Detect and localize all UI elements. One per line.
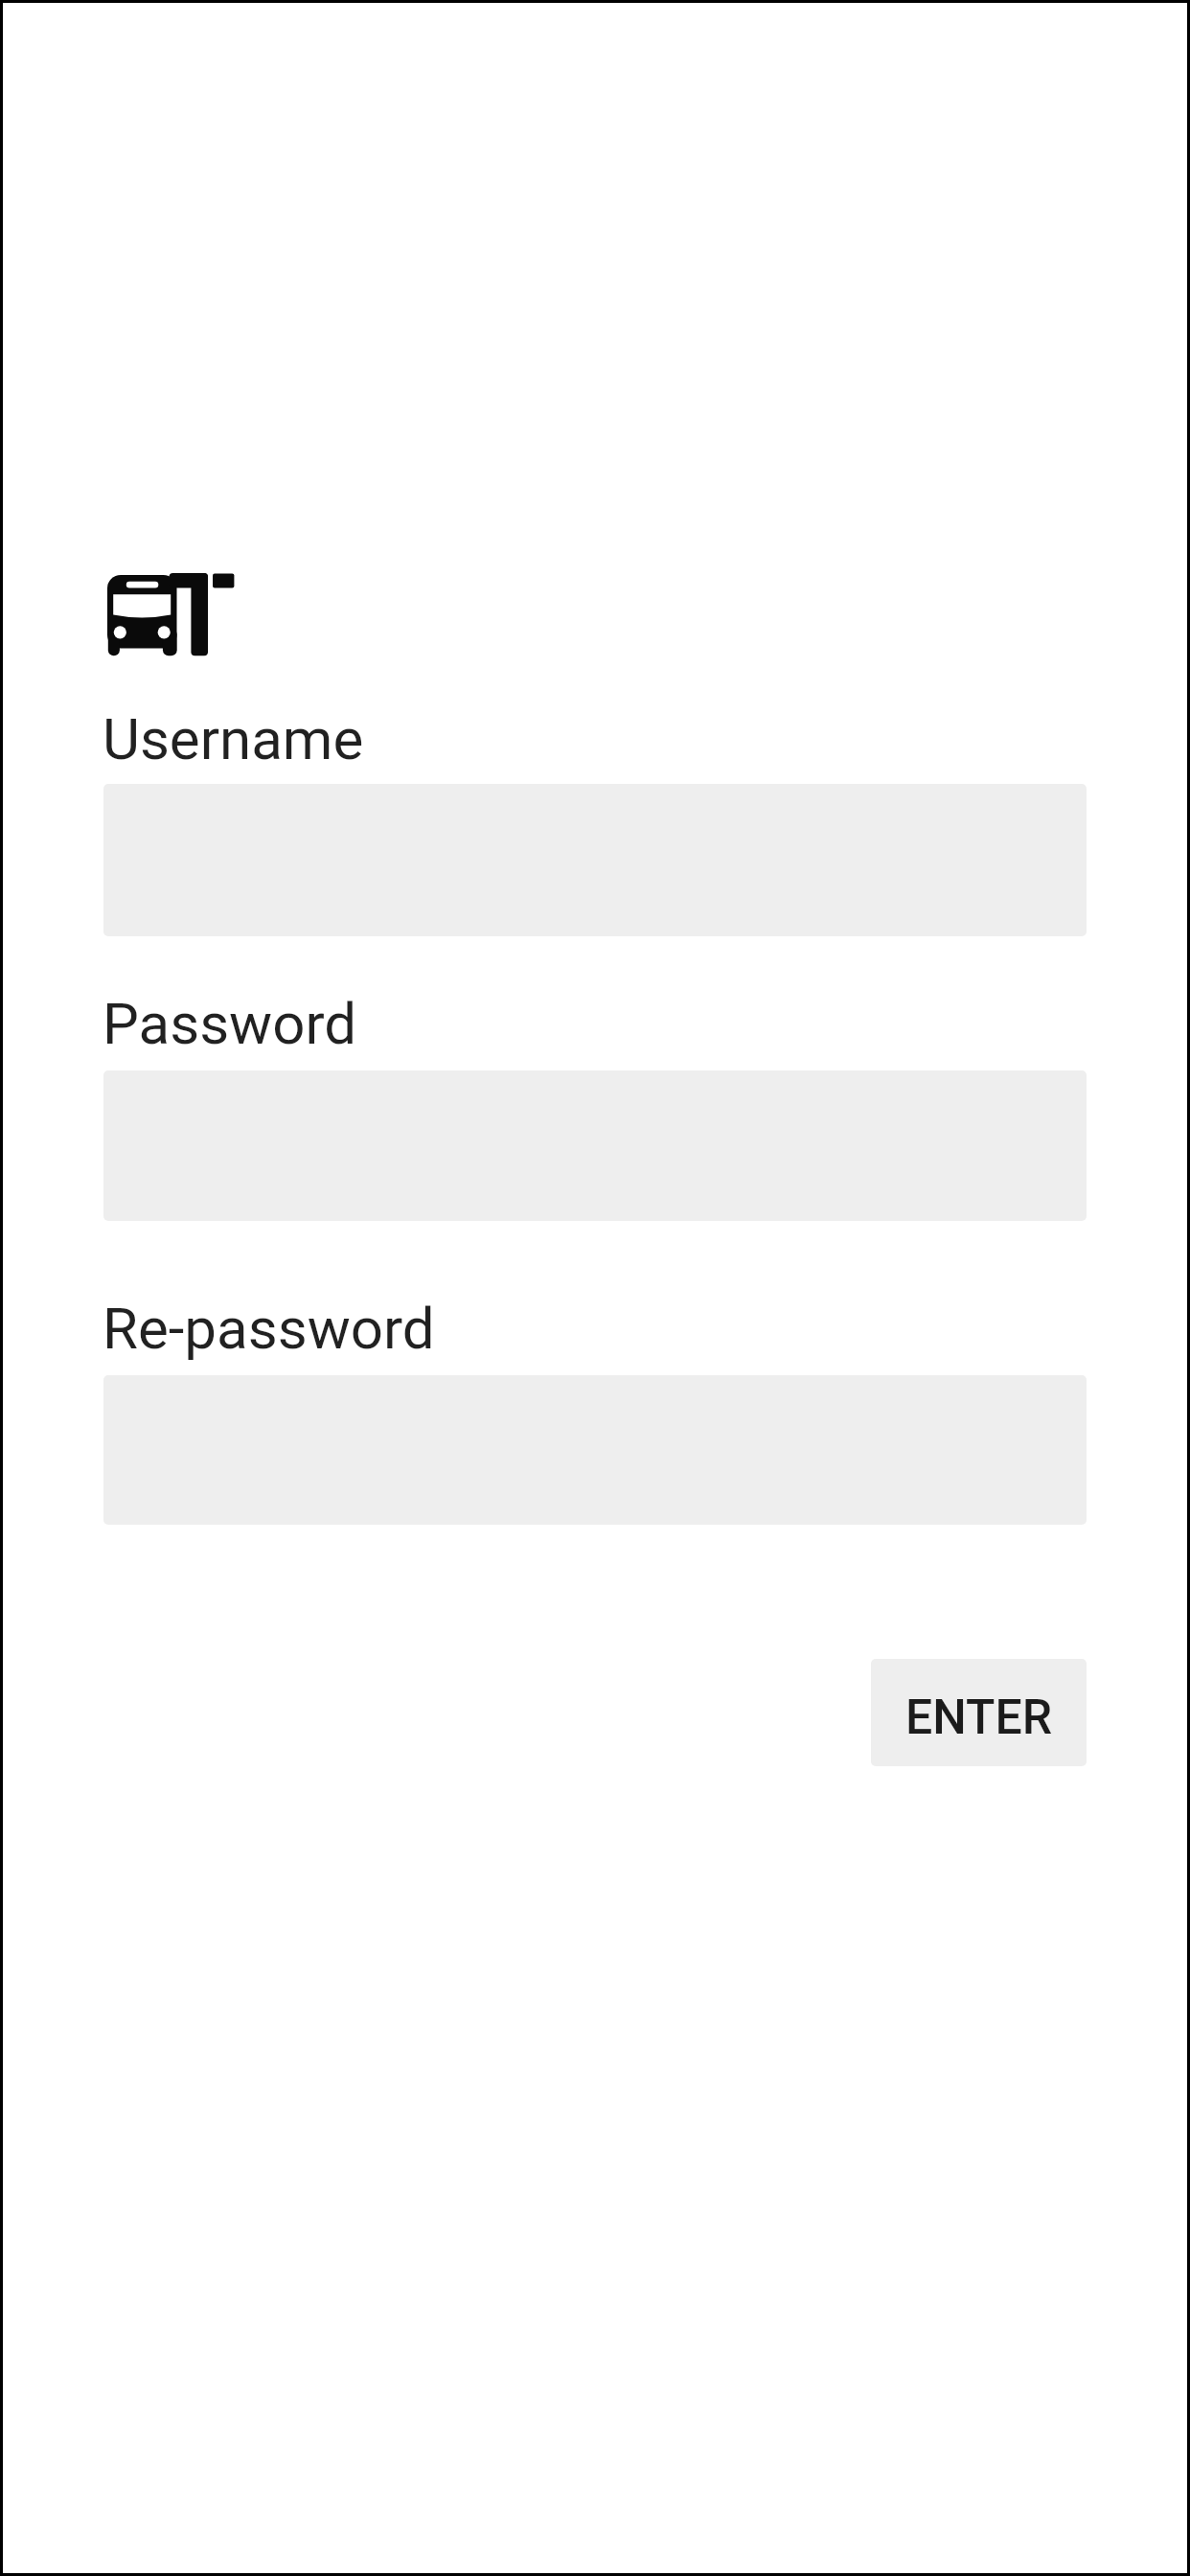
staticText: ENTER [905,1690,1052,1746]
staticText: Re-password [103,1295,435,1362]
staticText: Password [103,990,357,1057]
staticText: Username [103,705,364,772]
button[interactable]: ENTER [871,1659,1087,1766]
